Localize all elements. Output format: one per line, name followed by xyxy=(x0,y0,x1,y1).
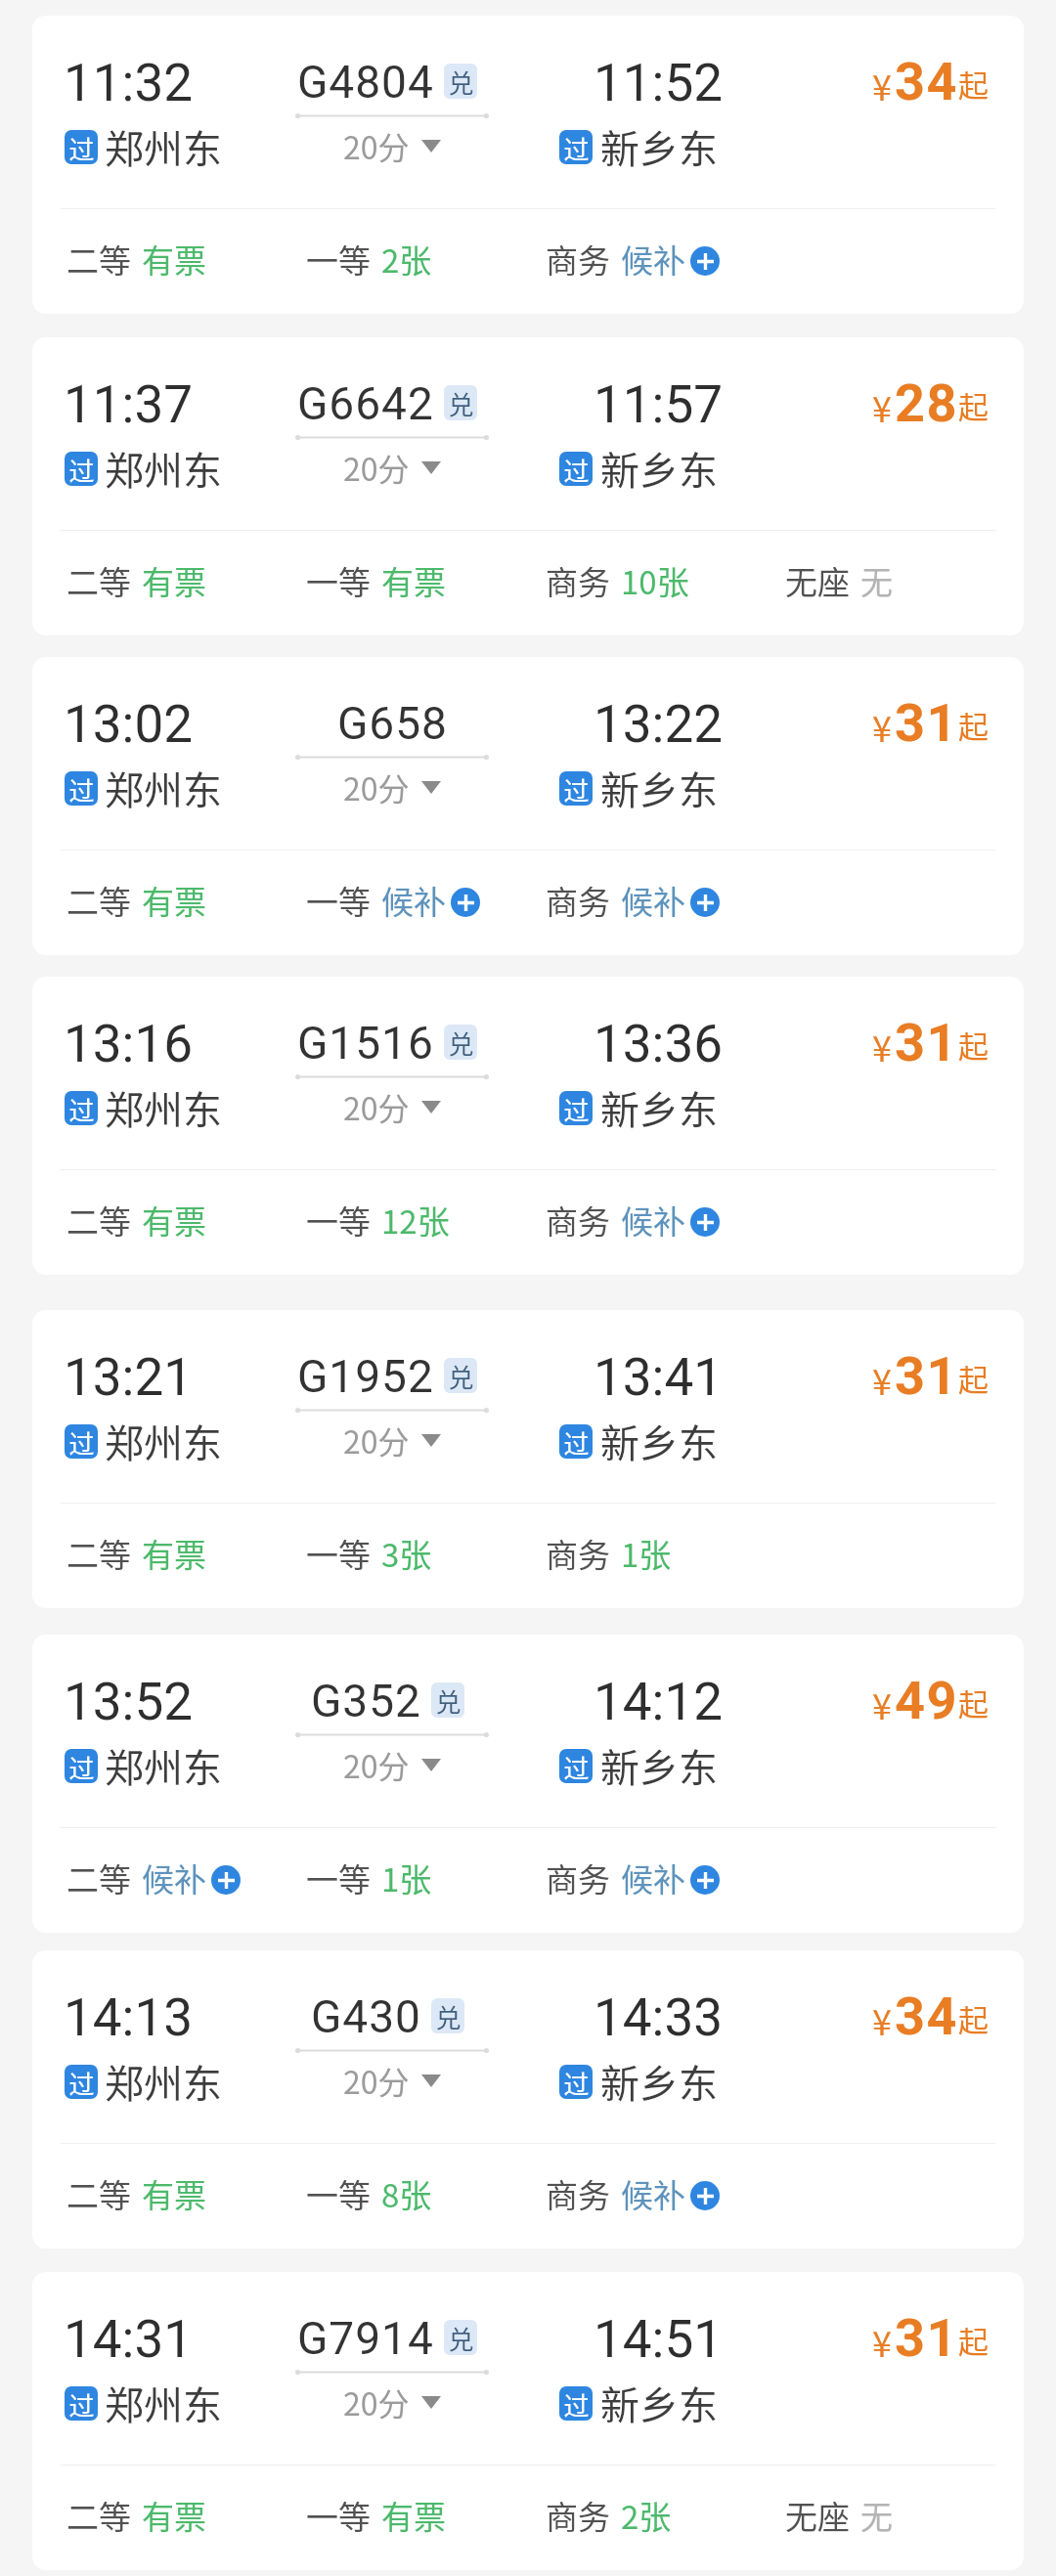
button[interactable]: 13:52 xyxy=(32,1635,1024,1933)
other: 展开行程详情 xyxy=(421,140,441,153)
button[interactable]: 一等 xyxy=(306,2492,446,2539)
button[interactable]: 一等 xyxy=(306,2170,432,2217)
staticText: 28 xyxy=(895,372,958,434)
button[interactable]: 候补购票 xyxy=(690,1207,720,1237)
button[interactable]: 二等 xyxy=(66,2170,206,2217)
staticText: 有票 xyxy=(142,2170,206,2217)
button[interactable]: 二等 xyxy=(66,1197,206,1244)
staticText: 候补 xyxy=(381,877,446,924)
staticText: 过 xyxy=(68,1091,95,1125)
button[interactable]: 11:37 xyxy=(32,337,1024,635)
button[interactable]: 候补购票 xyxy=(451,888,480,917)
staticText: 起 xyxy=(958,383,989,427)
button[interactable]: 一等 xyxy=(306,1855,432,1901)
staticText: 一等 xyxy=(306,1855,371,1901)
button[interactable]: 二等 xyxy=(66,877,206,924)
button[interactable]: 候补购票 xyxy=(690,888,720,917)
staticText: 郑州东 xyxy=(105,440,222,497)
button[interactable]: 二等 xyxy=(66,2492,206,2539)
button[interactable]: 二等 xyxy=(66,236,206,283)
button[interactable]: 14:13 xyxy=(32,1950,1024,2249)
button[interactable]: 候补购票 xyxy=(690,2181,720,2210)
staticText: 商务 xyxy=(546,877,610,924)
button[interactable]: 商务 xyxy=(546,557,689,604)
button[interactable]: 13:02 xyxy=(32,657,1024,955)
button[interactable]: 商务 xyxy=(546,1530,672,1577)
staticText: 11:32 xyxy=(64,53,193,113)
button[interactable]: 20分 xyxy=(295,123,489,168)
staticText: 郑州东 xyxy=(105,760,222,816)
staticText: 3张 xyxy=(381,1530,432,1577)
other: 展开行程详情 xyxy=(421,1759,441,1771)
staticText: 11:57 xyxy=(594,374,723,435)
staticText: 起 xyxy=(958,703,989,747)
button[interactable]: 二等 xyxy=(66,557,206,604)
button[interactable]: 20分 xyxy=(295,1084,489,1129)
staticText: 商务 xyxy=(546,1855,610,1901)
button[interactable]: 一等 xyxy=(306,557,446,604)
staticText: 31 xyxy=(895,1012,958,1073)
staticText: 1张 xyxy=(381,1855,432,1901)
button[interactable]: 13:16 xyxy=(32,977,1024,1275)
staticText: 郑州东 xyxy=(105,1413,222,1469)
button[interactable]: 商务 xyxy=(546,877,720,924)
staticText: 过 xyxy=(563,2386,590,2421)
staticText: 20分 xyxy=(343,1418,410,1463)
button[interactable]: 11:32 xyxy=(32,16,1024,314)
button[interactable]: 20分 xyxy=(295,1742,489,1787)
button[interactable]: 13:21 xyxy=(32,1310,1024,1608)
staticText: 有票 xyxy=(381,557,446,604)
staticText: 新乡东 xyxy=(600,760,718,816)
staticText: 二等 xyxy=(66,236,131,283)
button[interactable]: 商务 xyxy=(546,1855,720,1901)
button[interactable]: 候补购票 xyxy=(690,246,720,276)
button[interactable]: 一等 xyxy=(306,1197,450,1244)
button[interactable]: 无座 xyxy=(785,557,893,604)
staticText: 一等 xyxy=(306,2170,371,2217)
staticText: 候补 xyxy=(621,236,685,283)
staticText: 候补 xyxy=(142,1855,206,1901)
button[interactable]: 二等 xyxy=(66,1530,206,1577)
button[interactable]: 商务 xyxy=(546,2492,672,2539)
button[interactable]: 一等 xyxy=(306,236,432,283)
staticText: 无 xyxy=(860,557,893,604)
staticText: ¥ xyxy=(872,1354,892,1405)
button[interactable]: 20分 xyxy=(295,764,489,809)
button[interactable]: 无座 xyxy=(785,2492,893,2539)
button[interactable]: 商务 xyxy=(546,1197,720,1244)
staticText: 20分 xyxy=(343,1084,410,1129)
staticText: 14:12 xyxy=(594,1672,723,1732)
button[interactable]: 二等 xyxy=(66,1855,241,1901)
staticText: 二等 xyxy=(66,1855,131,1901)
button[interactable]: 候补购票 xyxy=(690,1865,720,1895)
staticText: 13:52 xyxy=(64,1672,193,1732)
button[interactable]: 14:31 xyxy=(32,2272,1024,2570)
staticText: 过 xyxy=(68,2065,95,2099)
staticText: 1张 xyxy=(621,1530,672,1577)
staticText: 兑 xyxy=(448,385,474,420)
staticText: 起 xyxy=(958,1996,989,2040)
staticText: 无座 xyxy=(785,557,850,604)
button[interactable]: 一等 xyxy=(306,877,480,924)
button[interactable]: 20分 xyxy=(295,2380,489,2424)
staticText: 候补 xyxy=(621,2170,685,2217)
staticText: ¥ xyxy=(872,1994,892,2045)
button[interactable]: 一等 xyxy=(306,1530,432,1577)
button[interactable]: 商务 xyxy=(546,236,720,283)
button[interactable]: 20分 xyxy=(295,2058,489,2103)
button[interactable]: 候补购票 xyxy=(211,1865,241,1895)
staticText: 有票 xyxy=(381,2492,446,2539)
staticText: 一等 xyxy=(306,557,371,604)
staticText: 2张 xyxy=(381,236,432,283)
other: 展开行程详情 xyxy=(421,781,441,794)
button[interactable]: 商务 xyxy=(546,2170,720,2217)
button[interactable]: 20分 xyxy=(295,1418,489,1463)
staticText: 无座 xyxy=(785,2492,850,2539)
staticText: 起 xyxy=(958,62,989,106)
staticText: 郑州东 xyxy=(105,1079,222,1136)
staticText: 14:51 xyxy=(594,2309,723,2370)
staticText: 31 xyxy=(895,1345,958,1407)
button[interactable]: 20分 xyxy=(295,445,489,490)
staticText: 起 xyxy=(958,1356,989,1400)
staticText: G4804 xyxy=(297,56,434,109)
